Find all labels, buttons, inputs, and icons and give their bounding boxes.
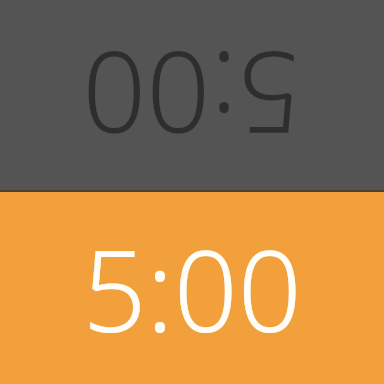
button[interactable]: Player two timer, 5 minutes 0 seconds — [0, 192, 384, 384]
staticText: 5:00 — [82, 19, 302, 172]
button[interactable]: Player one timer, 5 minutes 0 seconds — [0, 0, 384, 190]
staticText: 5:00 — [82, 212, 302, 365]
